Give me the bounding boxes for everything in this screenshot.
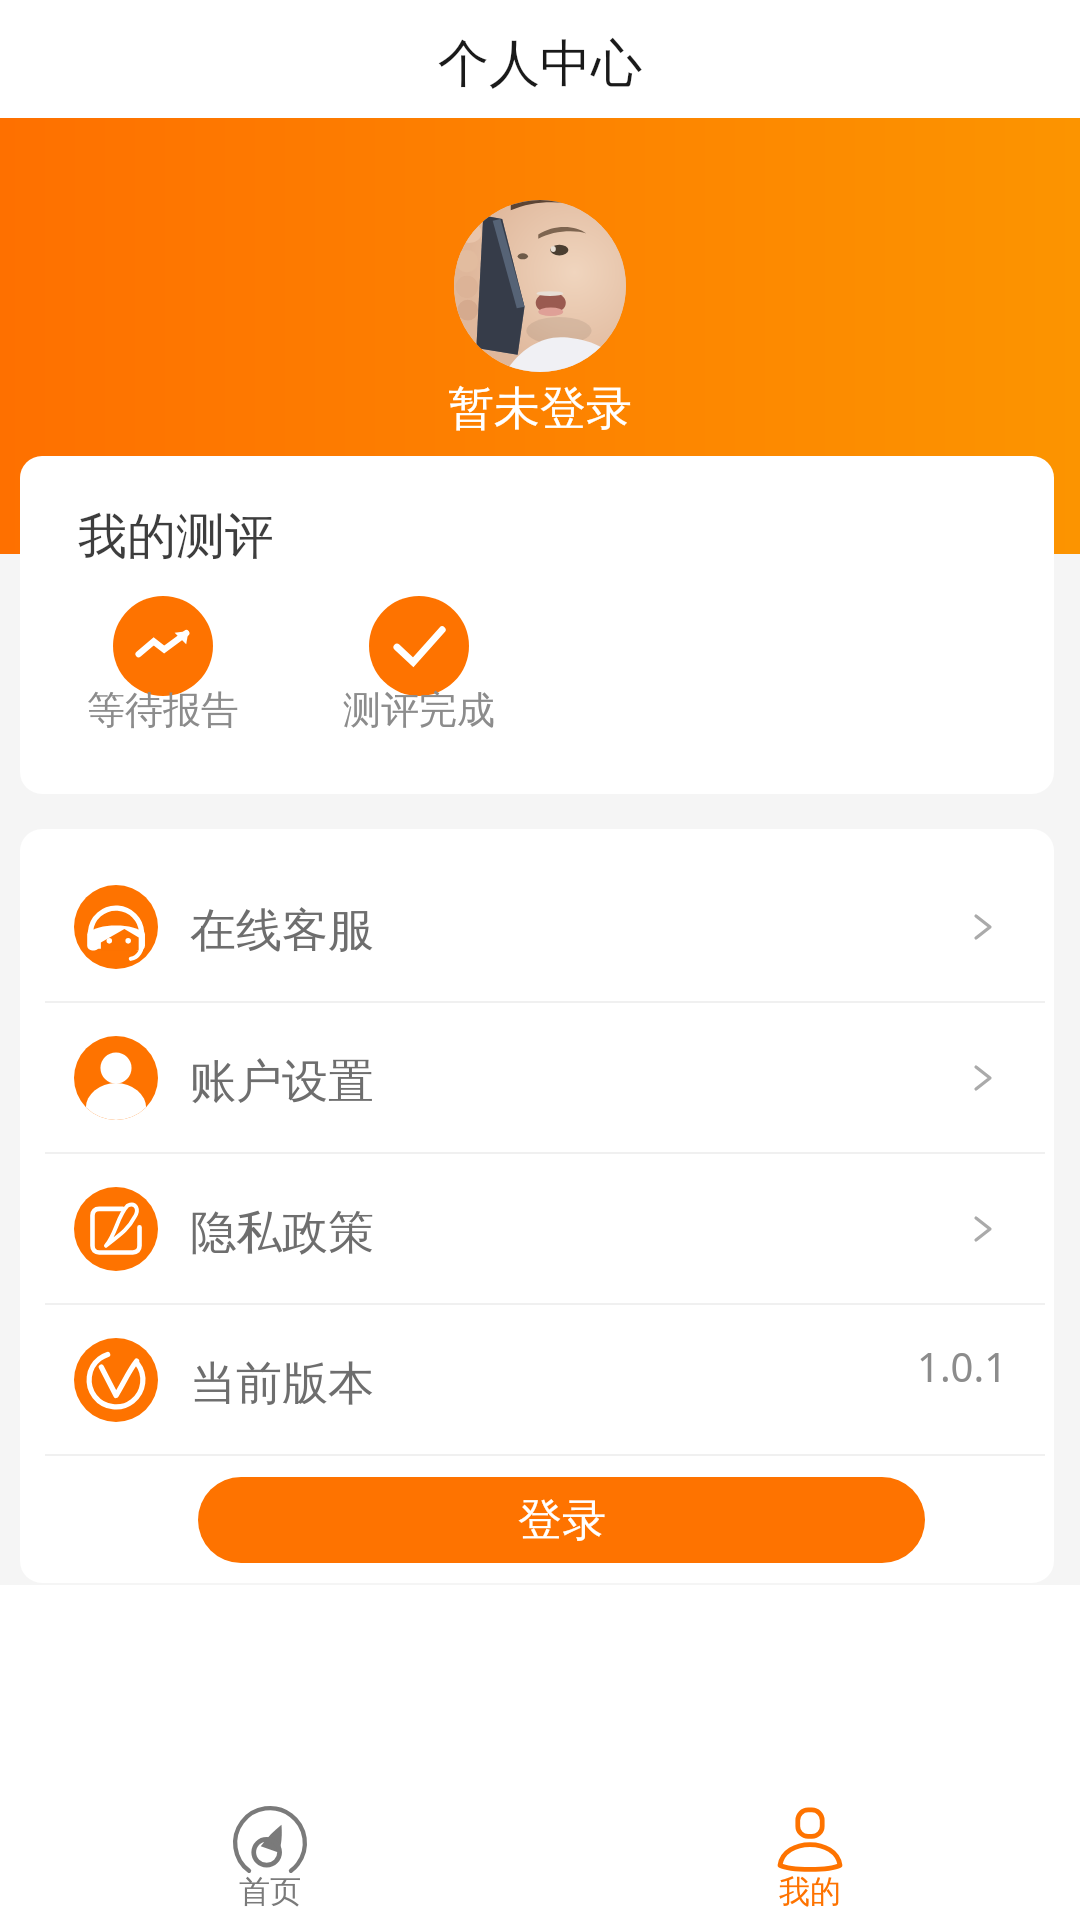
button[interactable]: Home	[0, 1750, 540, 1920]
button[interactable]: Profile photo	[454, 200, 626, 372]
staticText: 在线客服	[190, 902, 374, 960]
staticText: 等待报告	[87, 686, 239, 734]
other: Profile	[777, 1806, 843, 1872]
button[interactable]: 隐私政策	[20, 1154, 1054, 1303]
button[interactable]: 等待报告	[63, 596, 263, 742]
other: Home	[233, 1806, 307, 1880]
staticText: 当前版本	[190, 1355, 374, 1413]
button[interactable]: 当前版本	[20, 1305, 1054, 1454]
staticText: 登录	[518, 1493, 606, 1548]
button[interactable]: 测评完成	[319, 596, 519, 742]
staticText: 隐私政策	[190, 1204, 374, 1262]
staticText: 首页	[239, 1872, 301, 1911]
button[interactable]: Profile	[540, 1750, 1080, 1920]
staticText: 我的	[779, 1872, 841, 1911]
button[interactable]: 暂未登录	[448, 380, 632, 438]
staticText: 1.0.1	[917, 1339, 1008, 1393]
staticText: 个人中心	[438, 32, 642, 96]
button[interactable]: 账户设置	[20, 1003, 1054, 1152]
button[interactable]: 在线客服	[20, 852, 1054, 1001]
staticText: 测评完成	[343, 686, 495, 734]
button[interactable]: 登录	[198, 1477, 925, 1563]
staticText: 账户设置	[190, 1053, 374, 1111]
staticText: 我的测评	[78, 506, 274, 568]
